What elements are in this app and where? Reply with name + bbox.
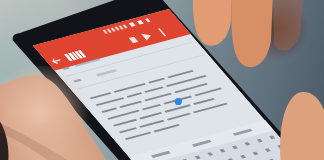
button[interactable] xyxy=(0,0,324,160)
